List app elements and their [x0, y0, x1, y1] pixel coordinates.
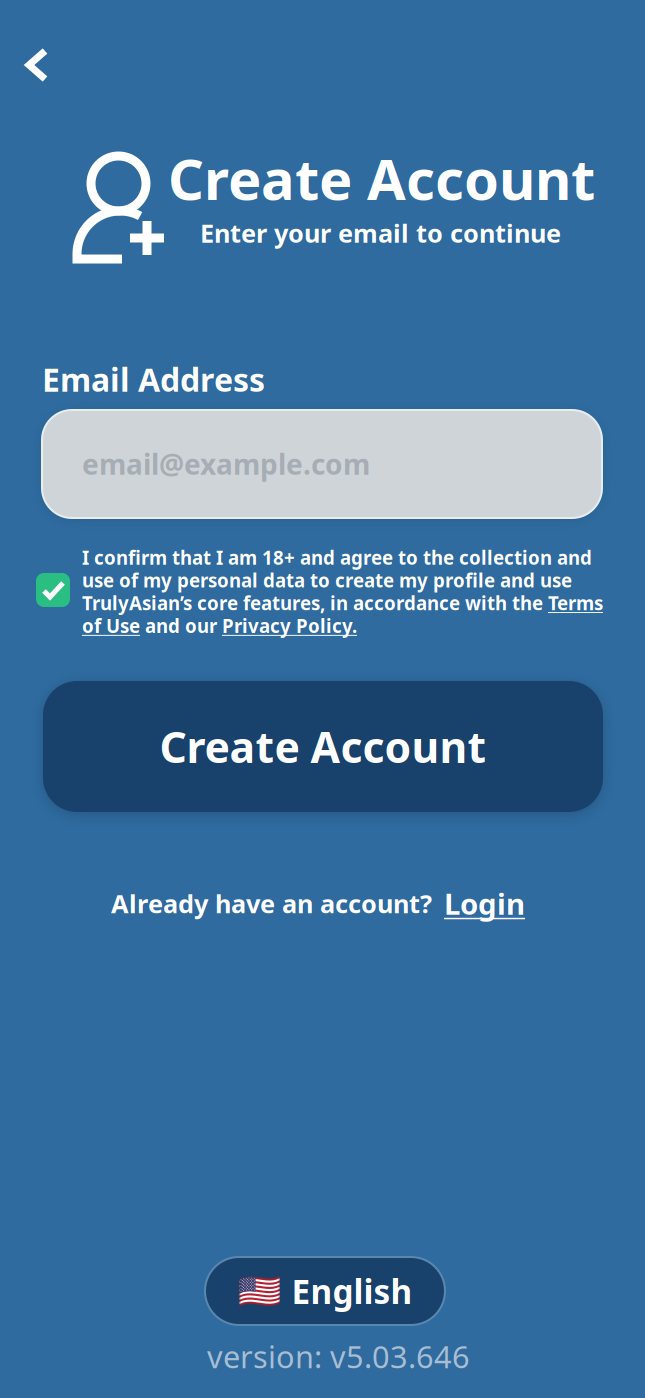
staticText: I confirm that I am 18+ and agree to the…	[82, 545, 603, 638]
staticText: 🇺🇸	[237, 1271, 280, 1311]
button[interactable]: Email Address	[42, 410, 602, 518]
staticText: version: v5.03.646	[207, 1336, 470, 1377]
staticText: Create Account	[159, 718, 486, 775]
staticText: Login	[444, 884, 525, 923]
staticText: Enter your email to continue	[200, 216, 561, 250]
staticText: Already have an account?	[111, 887, 432, 920]
staticText: email@example.com	[82, 445, 370, 483]
staticText: Email Address	[42, 358, 265, 400]
button[interactable]: I confirm that I am 18+ and agree	[28, 565, 78, 615]
staticText: English	[291, 1269, 412, 1313]
button[interactable]: Login	[444, 884, 525, 923]
button[interactable]: Create Account	[43, 681, 603, 812]
button[interactable]: 🇺🇸	[205, 1257, 445, 1325]
button[interactable]: Back	[0, 0, 74, 101]
staticText: Create Account	[168, 141, 595, 215]
